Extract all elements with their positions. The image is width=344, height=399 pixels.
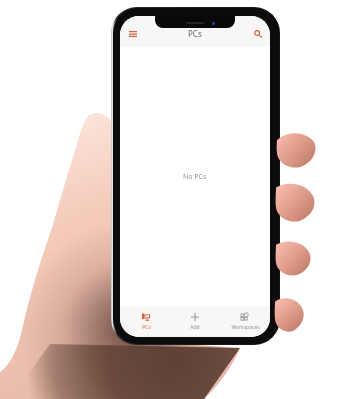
- button[interactable]: Menu: [125, 26, 141, 42]
- staticText: PCs: [142, 324, 151, 331]
- staticText: PCs: [188, 28, 202, 39]
- button[interactable]: Search: [250, 26, 266, 42]
- staticText: Add: [190, 324, 200, 331]
- button[interactable]: Add: [171, 306, 219, 337]
- staticText: No PCs: [183, 172, 207, 182]
- staticText: Workspaces: [231, 324, 260, 331]
- button[interactable]: Workspaces: [221, 306, 269, 337]
- button[interactable]: PCs: [122, 306, 170, 337]
